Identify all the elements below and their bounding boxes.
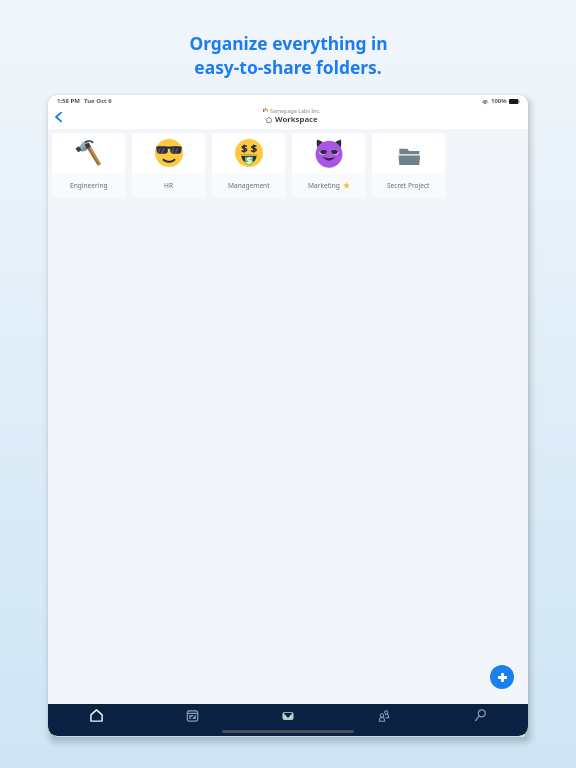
button[interactable]: Add [490, 665, 514, 689]
button[interactable]: Tasks [144, 704, 240, 727]
staticText: HR [164, 181, 173, 190]
staticText: 1:58 PM [57, 97, 80, 105]
button[interactable]: Inbox [240, 704, 336, 727]
button[interactable]: Marketing [292, 133, 365, 198]
staticText: Engineering [70, 181, 108, 190]
staticText: Samepage Labs Inc. [270, 107, 321, 114]
button[interactable]: People [336, 704, 432, 727]
button[interactable]: Home [48, 704, 144, 727]
staticText: easy-to-share folders. [194, 55, 382, 79]
staticText: Marketing [308, 181, 340, 190]
staticText: Management [228, 181, 270, 190]
button[interactable]: Management [212, 133, 285, 198]
staticText: Workspace [275, 114, 318, 125]
staticText: 100% [491, 97, 507, 105]
button[interactable]: HR [132, 133, 205, 198]
button[interactable]: Secret Project [372, 133, 445, 198]
button[interactable]: Search [432, 704, 528, 727]
staticText: Tue Oct 6 [84, 97, 112, 105]
staticText: Organize everything in [189, 31, 388, 55]
button[interactable]: Engineering [52, 133, 125, 198]
staticText: Secret Project [387, 181, 430, 190]
button[interactable]: Back [50, 109, 66, 125]
